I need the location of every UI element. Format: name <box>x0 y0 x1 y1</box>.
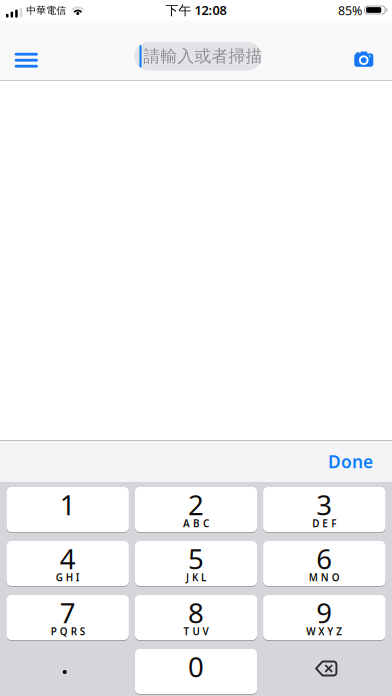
staticText: 3 <box>316 486 332 523</box>
button[interactable]: . <box>7 649 129 694</box>
button[interactable]: 9 <box>263 595 385 640</box>
button[interactable]: Menu <box>8 44 44 76</box>
button[interactable]: Delete <box>263 649 385 694</box>
button[interactable]: 8 <box>135 595 257 640</box>
button[interactable]: 7 <box>7 595 129 640</box>
staticText: 85% <box>338 2 362 19</box>
staticText: 中華電信 <box>26 4 66 17</box>
staticText: 2 <box>188 486 204 523</box>
staticText: 0 <box>188 648 204 685</box>
button[interactable]: 6 <box>263 541 385 586</box>
staticText: J K L <box>186 571 206 584</box>
staticText: M N O <box>309 571 340 584</box>
button[interactable]: 3 <box>263 487 385 532</box>
staticText: 9 <box>316 594 332 631</box>
staticText: Done <box>328 450 373 473</box>
staticText: 6 <box>316 540 332 577</box>
staticText: G H I <box>56 571 80 584</box>
button[interactable]: 5 <box>135 541 257 586</box>
staticText: 請輸入或者掃描 <box>143 46 262 67</box>
button[interactable]: 1 <box>7 487 129 532</box>
staticText: P Q R S <box>51 625 85 638</box>
button[interactable]: 請輸入或者掃描 <box>135 42 262 70</box>
button[interactable]: 0 <box>135 649 257 694</box>
staticText: T U V <box>183 625 208 638</box>
button[interactable]: 2 <box>135 487 257 532</box>
button[interactable]: 4 <box>7 541 129 586</box>
staticText: D E F <box>312 517 336 530</box>
button[interactable]: Camera <box>346 43 382 75</box>
button[interactable]: Done <box>328 450 373 473</box>
staticText: 4 <box>60 540 76 577</box>
staticText: 5 <box>188 540 204 577</box>
staticText: 下午 12:08 <box>165 1 226 19</box>
staticText: W X Y Z <box>306 625 342 638</box>
staticText: 7 <box>60 594 76 631</box>
staticText: 1 <box>60 486 76 523</box>
staticText: A B C <box>183 517 209 530</box>
staticText: 8 <box>188 594 204 631</box>
